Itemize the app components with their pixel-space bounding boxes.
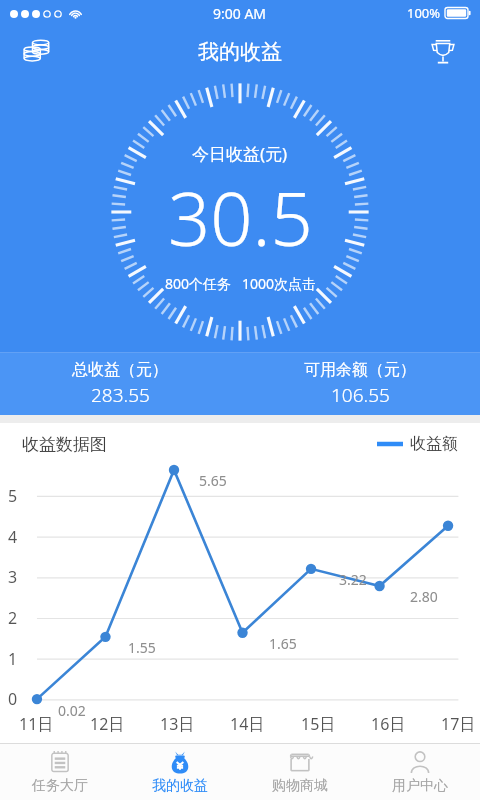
staticText: 3.22 <box>339 570 367 589</box>
staticText: 1.65 <box>269 634 297 653</box>
staticText: 用户中心 <box>392 777 448 795</box>
staticText: 我的收益 <box>198 39 282 65</box>
staticText: 1 <box>8 648 18 670</box>
staticText: 收益额 <box>410 434 458 454</box>
button[interactable]: 购物商城 <box>240 744 360 800</box>
button[interactable]: 用户中心 <box>360 744 480 800</box>
staticText: 800个任务 1000次点击 <box>165 274 316 293</box>
staticText: 15日 <box>301 713 336 735</box>
staticText: 12日 <box>90 713 125 735</box>
staticText: 购物商城 <box>272 777 328 795</box>
staticText: 2.80 <box>410 587 438 606</box>
staticText: 14日 <box>230 713 265 735</box>
button[interactable]: 可用余额（元） <box>240 356 480 412</box>
staticText: 283.55 <box>91 382 150 408</box>
staticText: 可用余额（元） <box>304 360 416 380</box>
staticText: 2 <box>8 607 18 629</box>
staticText: 106.55 <box>331 382 390 408</box>
button[interactable]: 我的收益 <box>120 744 240 800</box>
staticText: 3 <box>8 566 18 588</box>
staticText: 5.65 <box>199 471 227 490</box>
staticText: 总收益（元） <box>72 360 168 380</box>
staticText: 13日 <box>160 713 195 735</box>
staticText: 任务大厅 <box>32 777 88 795</box>
staticText: 9:00 AM <box>213 4 267 23</box>
staticText: 今日收益(元) <box>192 142 288 165</box>
staticText: 11日 <box>19 713 54 735</box>
staticText: 4 <box>8 526 18 548</box>
button[interactable]: Coins <box>14 29 60 75</box>
staticText: 收益数据图 <box>22 434 107 455</box>
staticText: 1.55 <box>128 638 156 657</box>
staticText: 0 <box>8 688 18 710</box>
staticText: 0.02 <box>58 701 86 720</box>
staticText: 30.5 <box>168 167 313 268</box>
staticText: 16日 <box>371 713 406 735</box>
staticText: 我的收益 <box>152 777 208 795</box>
button[interactable]: 总收益（元） <box>0 356 240 412</box>
staticText: 17日 <box>441 713 476 735</box>
button[interactable]: 任务大厅 <box>0 744 120 800</box>
button[interactable]: 收益额 <box>377 434 458 454</box>
staticText: 100% <box>407 4 441 22</box>
staticText: 5 <box>8 485 18 507</box>
button[interactable]: Ranking <box>420 29 466 75</box>
